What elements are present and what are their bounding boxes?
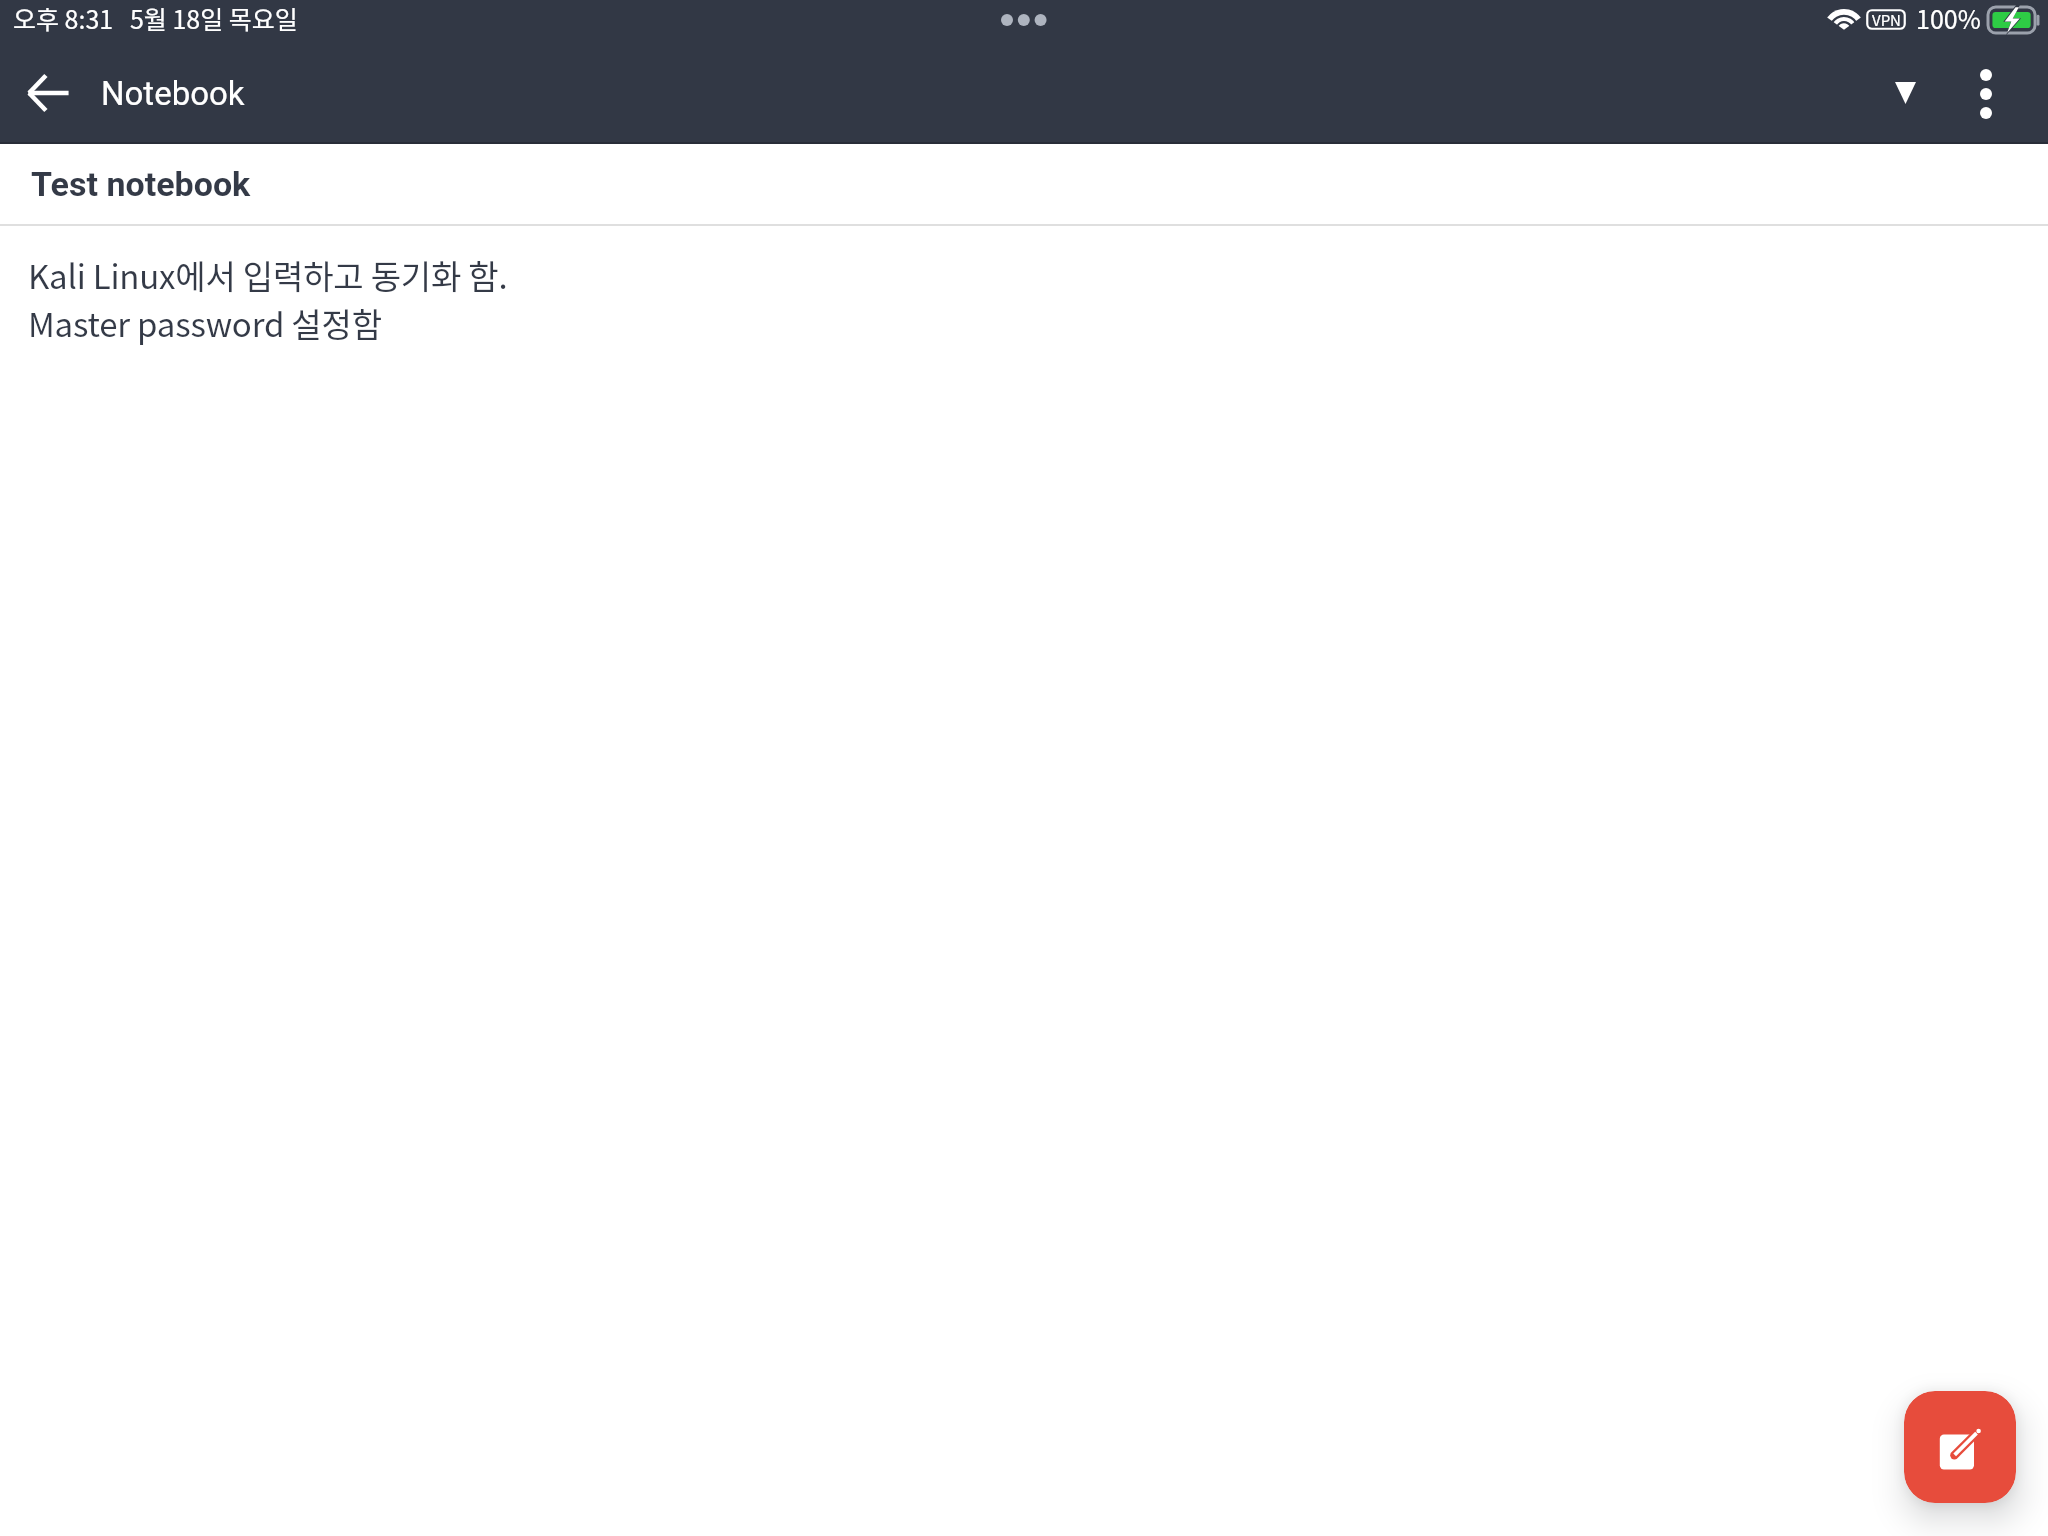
staticText: Test notebook <box>31 164 251 204</box>
button[interactable]: More options <box>1938 45 2034 144</box>
staticText: Kali Linux에서 입력하고 동기화 함. <box>28 251 508 299</box>
staticText: Notebook <box>101 74 245 113</box>
staticText: 오후 8:31 5월 18일 목요일 <box>13 0 298 36</box>
staticText: Master password 설정함 <box>28 299 382 347</box>
staticText: VPN <box>1872 9 1901 30</box>
button[interactable]: New note <box>1904 1391 2016 1503</box>
button[interactable]: Kali Linux에서 입력하고 동기화 함. <box>0 226 2048 365</box>
button[interactable]: Back <box>0 45 96 144</box>
button[interactable]: Test notebook <box>0 144 2048 224</box>
button[interactable]: Expand notebook list <box>1842 45 1938 144</box>
staticText: 100% <box>1916 0 1981 36</box>
